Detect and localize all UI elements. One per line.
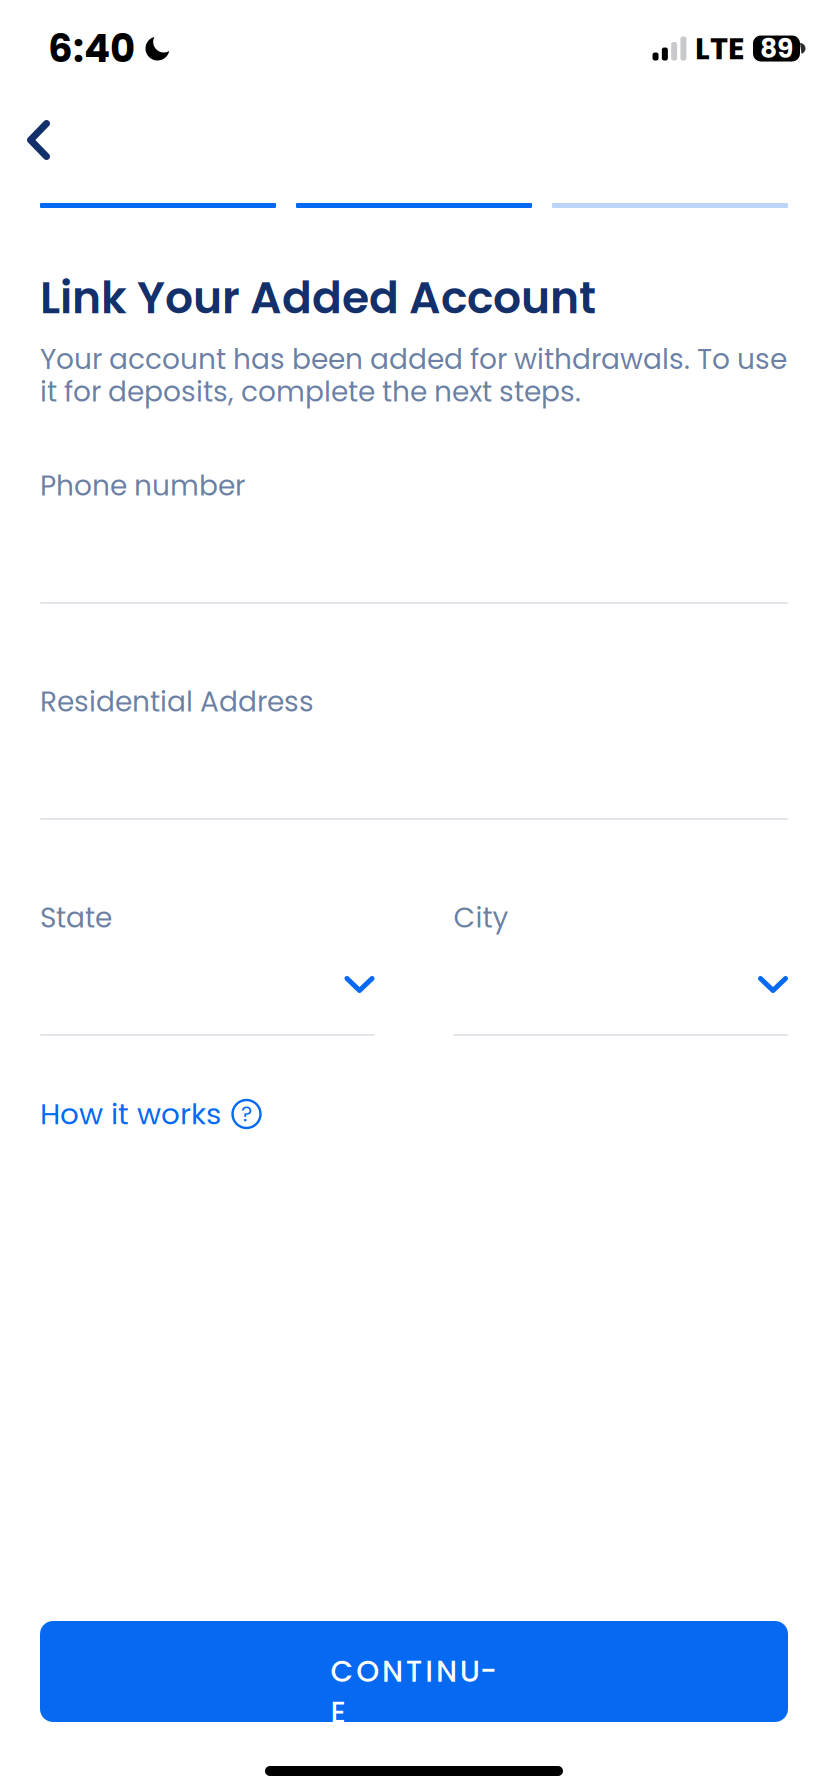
button[interactable]: Phone number	[40, 460, 788, 604]
button[interactable]: CONTINUE	[40, 1621, 788, 1722]
staticText: Link Your Added Account	[40, 267, 596, 329]
button[interactable]: How it works	[40, 1093, 261, 1135]
button[interactable]: Back	[0, 100, 100, 180]
button[interactable]: State	[40, 892, 374, 1036]
staticText: Your account has been added for withdraw…	[40, 343, 787, 408]
staticText: 6:40	[48, 21, 135, 75]
staticText: ?	[241, 1099, 252, 1129]
staticText: How it works	[40, 1093, 221, 1135]
staticText: Residential Address	[40, 682, 314, 721]
staticText: CONTINUE	[330, 1651, 497, 1692]
button[interactable]: Residential Address	[40, 676, 788, 820]
staticText: 89	[760, 30, 793, 67]
button[interactable]: City	[453, 892, 788, 1036]
staticText: Phone number	[40, 466, 245, 505]
staticText: State	[40, 898, 112, 937]
staticText: LTE	[695, 27, 745, 70]
staticText: City	[453, 898, 508, 937]
